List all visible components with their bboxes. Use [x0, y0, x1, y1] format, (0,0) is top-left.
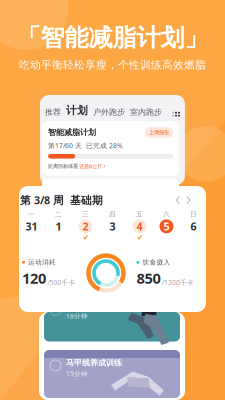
button[interactable]: 室内跑步 [130, 107, 162, 117]
button[interactable]: 二 [45, 210, 72, 239]
staticText: 距离目标体重 [48, 163, 78, 169]
staticText: 3 [109, 219, 115, 233]
staticText: /500千卡 [47, 278, 75, 287]
button[interactable]: All plans [172, 112, 180, 117]
staticText: 18分钟 [66, 311, 88, 320]
staticText: 吃动平衡轻松享瘦，个性训练高效燃脂 [19, 58, 206, 72]
staticText: 三 [82, 210, 89, 218]
staticText: 运动消耗 [28, 258, 56, 266]
staticText: 室内跑步 [130, 107, 162, 117]
staticText: 上周报告 [149, 129, 169, 136]
staticText: 「智能减脂计划」 [16, 23, 208, 52]
staticText: 6 [190, 219, 196, 233]
staticText: 850 [136, 268, 160, 288]
staticText: 120 [22, 268, 46, 288]
staticText: 5 [163, 219, 169, 233]
staticText: 1 [55, 219, 61, 233]
staticText: 第 3/8 周 基础期 [20, 193, 103, 207]
staticText: 15分钟 [66, 369, 88, 378]
staticText: 马甲线养成训练 [66, 358, 122, 368]
button[interactable]: 计划 [66, 104, 88, 117]
staticText: /1300千卡 [162, 278, 194, 287]
staticText: 四 [109, 210, 116, 218]
button[interactable]: Previous week [173, 194, 183, 207]
button[interactable]: 日 [180, 210, 207, 239]
button[interactable]: Next week [183, 194, 194, 207]
staticText: 户外跑步 [93, 107, 125, 117]
button[interactable]: 距离目标体重 [48, 163, 106, 170]
staticText: 日 [190, 210, 197, 218]
button[interactable]: 一 [18, 210, 45, 239]
button[interactable]: 推荐 [45, 107, 61, 117]
staticText: 五 [136, 210, 143, 218]
button[interactable]: 六 [153, 210, 180, 239]
staticText: 饮食摄入 [142, 258, 170, 266]
staticText: 已完成 28% [86, 141, 123, 150]
staticText: 还差6公斤 [79, 163, 102, 170]
staticText: 第17/60 天 [48, 141, 82, 150]
staticText: 智能减脂计划 [48, 127, 96, 137]
button[interactable]: 马甲线养成训练 [44, 350, 180, 398]
staticText: 六 [163, 210, 170, 218]
staticText: 31 [25, 219, 37, 233]
staticText: 推荐 [45, 107, 61, 117]
button[interactable]: 户外跑步 [93, 107, 125, 117]
staticText: 计划 [66, 104, 88, 117]
button[interactable]: 18分钟 [44, 312, 180, 345]
staticText: 一 [28, 210, 35, 218]
button[interactable]: 上周报告 [145, 127, 173, 138]
staticText: 4 [136, 219, 142, 233]
button[interactable]: 三 [72, 210, 99, 239]
staticText: 2 [82, 219, 88, 233]
button[interactable]: 五 [126, 210, 153, 239]
staticText: 二 [55, 210, 62, 218]
button[interactable]: 四 [99, 210, 126, 239]
